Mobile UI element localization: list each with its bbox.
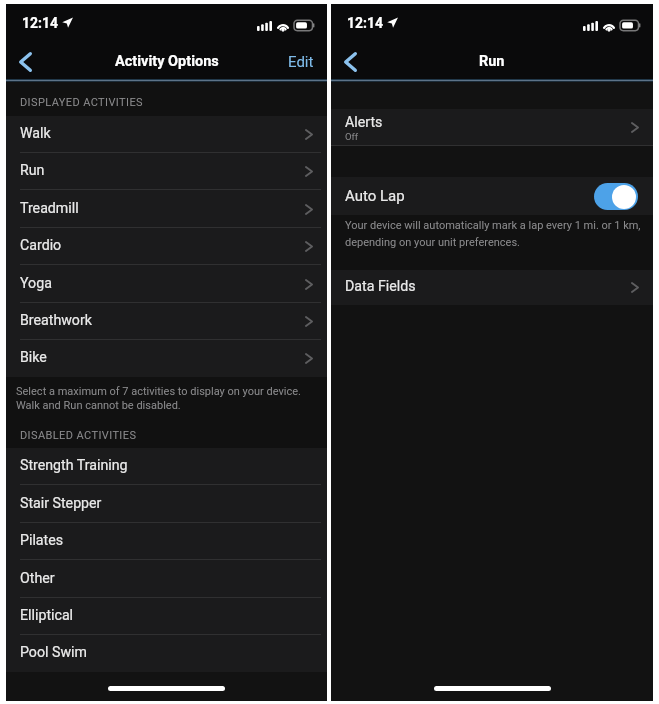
staticText: Stair Stepper [20, 495, 102, 512]
button[interactable]: Data Fields [331, 270, 653, 305]
staticText: Elliptical [20, 607, 74, 624]
staticText: Treadmill [20, 200, 79, 217]
button[interactable]: Elliptical [6, 598, 327, 635]
staticText: DISABLED ACTIVITIES [20, 429, 137, 442]
staticText: Pool Swim [20, 644, 87, 661]
staticText: Run [479, 53, 505, 70]
button[interactable]: Auto Lap on [594, 183, 638, 210]
button[interactable]: Back [333, 45, 367, 79]
staticText: Run [20, 162, 45, 179]
button[interactable]: Other [6, 560, 327, 598]
staticText: Off [345, 131, 359, 142]
staticText: Yoga [20, 275, 52, 292]
button[interactable]: Run [6, 153, 327, 190]
button[interactable]: Pool Swim [6, 635, 327, 672]
button[interactable]: Alerts [331, 109, 653, 146]
staticText: 12:14 [22, 15, 59, 31]
staticText: Select a maximum of 7 activities to disp… [16, 385, 321, 412]
button[interactable]: Bike [6, 340, 327, 377]
button[interactable]: Treadmill [6, 190, 327, 228]
staticText: Walk [20, 125, 51, 142]
button[interactable]: Strength Training [6, 448, 327, 485]
staticText: Strength Training [20, 457, 128, 474]
staticText: Auto Lap [345, 187, 405, 205]
button[interactable]: Back [8, 45, 42, 79]
staticText: Data Fields [345, 278, 416, 295]
staticText: Bike [20, 349, 47, 366]
staticText: Pilates [20, 532, 64, 549]
button[interactable]: Stair Stepper [6, 485, 327, 523]
button[interactable]: Cardio [6, 228, 327, 265]
staticText: Other [20, 570, 55, 587]
button[interactable]: Walk [6, 116, 327, 153]
button[interactable]: Auto Lap [331, 177, 653, 215]
staticText: Alerts [345, 114, 383, 131]
staticText: Cardio [20, 237, 62, 254]
button[interactable]: Edit [282, 49, 320, 75]
button[interactable]: Pilates [6, 523, 327, 560]
button[interactable]: Yoga [6, 265, 327, 303]
staticText: Activity Options [115, 53, 219, 70]
staticText: Edit [288, 53, 314, 71]
staticText: 12:14 [347, 15, 384, 31]
button[interactable]: Breathwork [6, 303, 327, 340]
staticText: Breathwork [20, 312, 92, 329]
staticText: Your device will automatically mark a la… [345, 219, 645, 248]
staticText: DISPLAYED ACTIVITIES [20, 96, 144, 109]
